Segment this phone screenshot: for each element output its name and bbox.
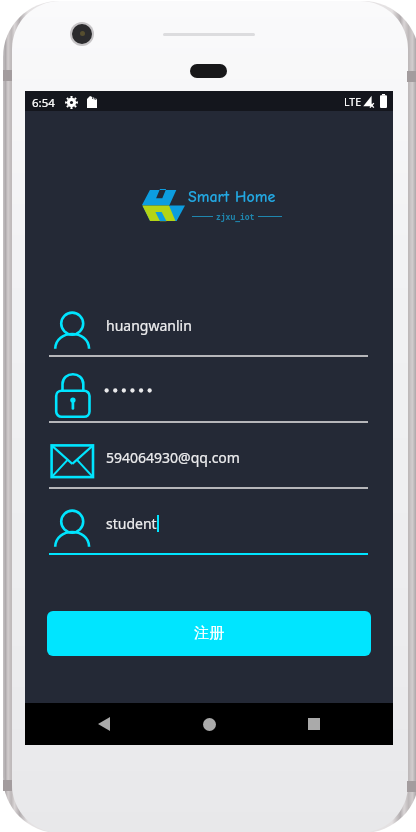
staticText: LTE bbox=[344, 95, 361, 109]
button[interactable]: Recent apps bbox=[288, 703, 340, 745]
staticText: student bbox=[106, 514, 157, 533]
staticText: 注册 bbox=[194, 624, 224, 643]
button[interactable]: huangwanlin bbox=[25, 291, 393, 357]
button[interactable]: 594064930@qq.com bbox=[25, 423, 393, 489]
button[interactable]: 注册 bbox=[47, 611, 371, 656]
button[interactable]: Back bbox=[78, 703, 130, 745]
staticText: zjxu_iot bbox=[216, 211, 255, 222]
button[interactable]: student bbox=[25, 489, 393, 555]
staticText: 6:54 bbox=[32, 95, 55, 111]
staticText: 594064930@qq.com bbox=[106, 448, 240, 467]
button[interactable]: Home bbox=[183, 703, 235, 745]
staticText: huangwanlin bbox=[106, 316, 192, 335]
staticText: Smart Home bbox=[188, 188, 276, 206]
button[interactable] bbox=[25, 357, 393, 423]
